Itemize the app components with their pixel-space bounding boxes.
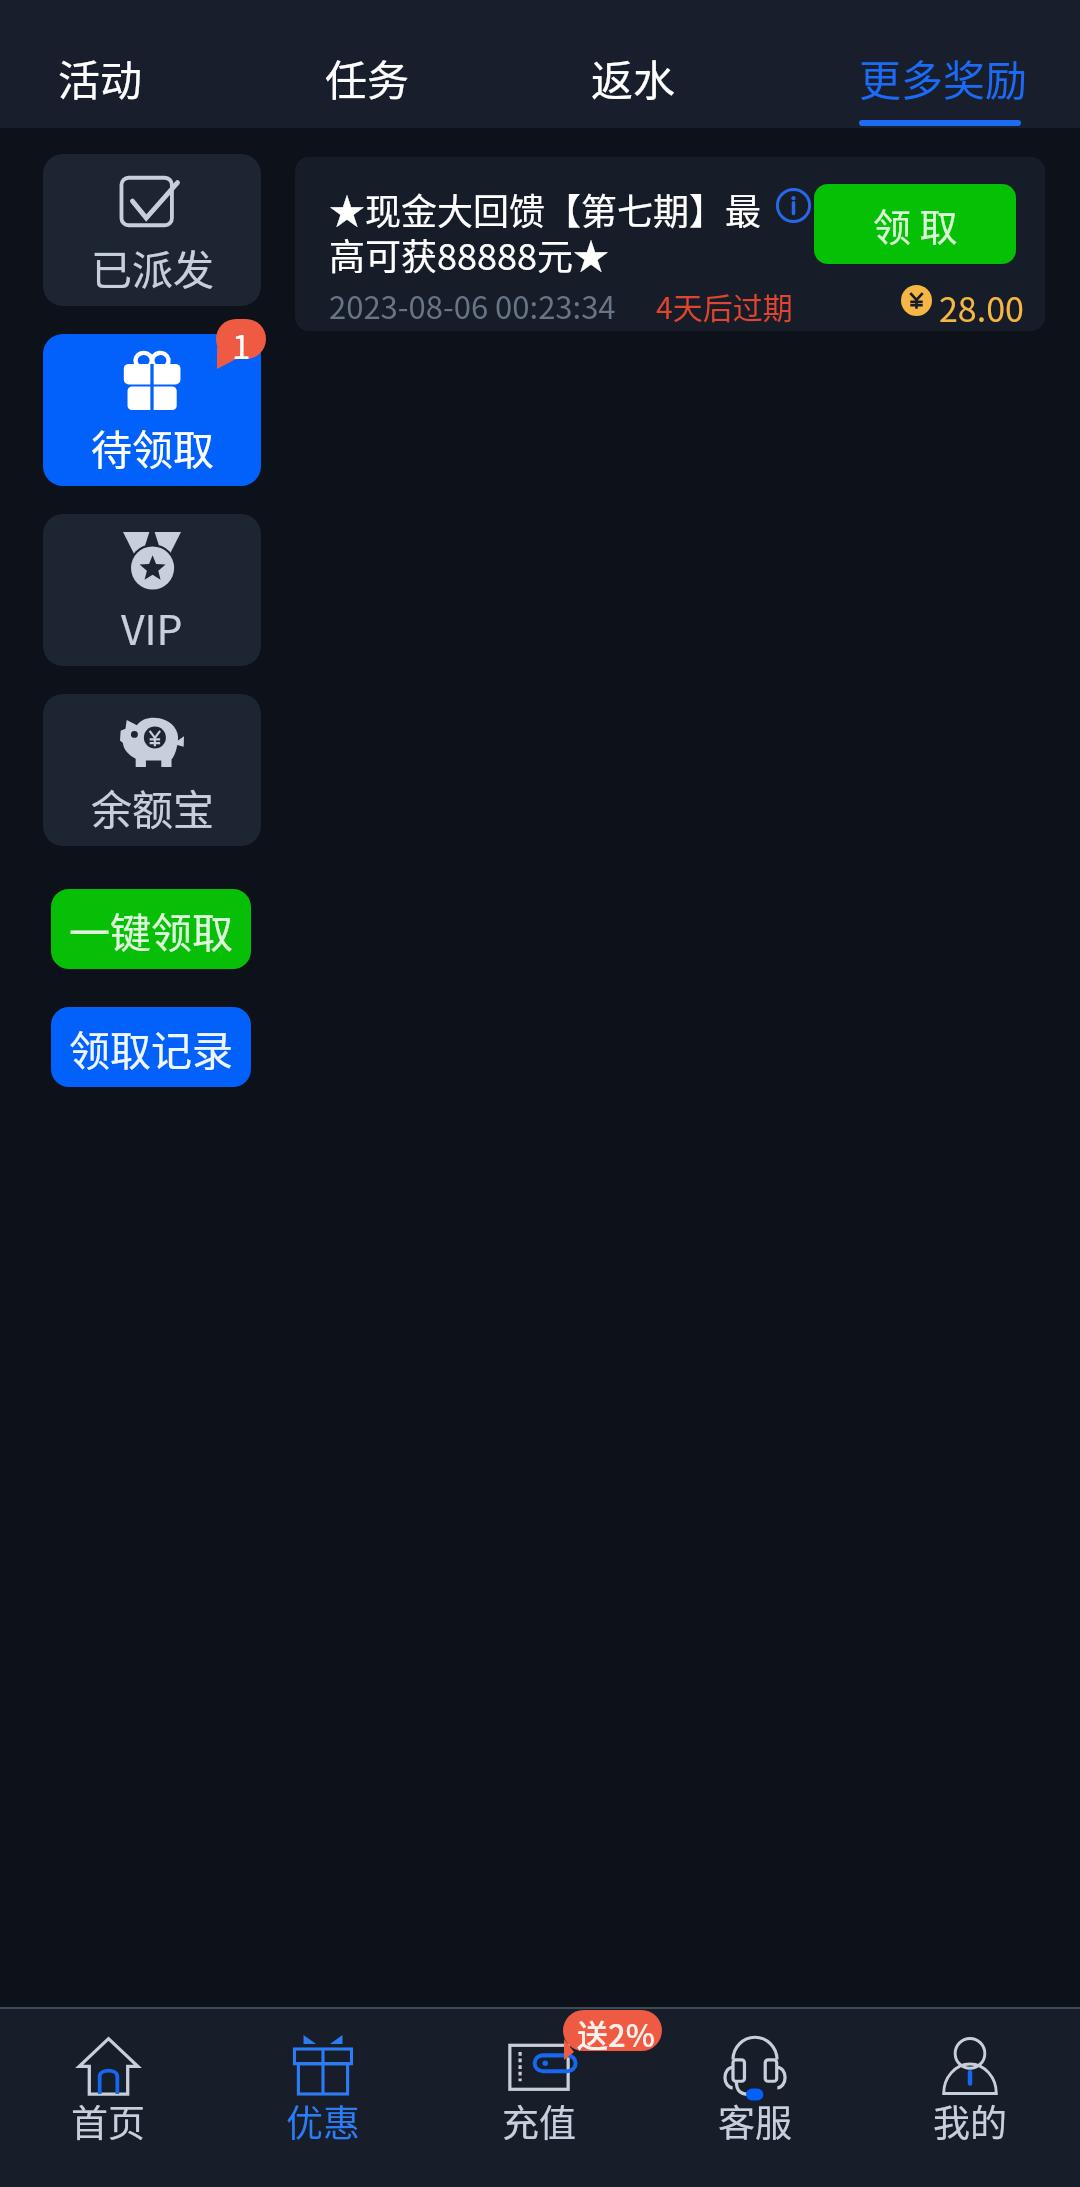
button[interactable]: 一键领取 xyxy=(51,889,251,969)
button[interactable]: 我的 xyxy=(862,2009,1078,2187)
staticText: 领取记录 xyxy=(69,1018,233,1077)
staticText: 余额宝 xyxy=(91,777,214,836)
staticText: 领 取 xyxy=(873,197,958,252)
staticText: 活动 xyxy=(58,47,143,108)
button[interactable]: VIP xyxy=(43,514,261,666)
staticText: 任务 xyxy=(325,47,410,108)
staticText: 送2% xyxy=(577,2011,655,2056)
button[interactable]: 余额宝 xyxy=(43,694,261,846)
button[interactable]: 优惠 xyxy=(215,2009,431,2187)
staticText: 2023-08-06 00:23:34 xyxy=(329,283,616,328)
staticText: 首页 xyxy=(71,2094,145,2148)
staticText: 返水 xyxy=(591,47,676,108)
button[interactable]: 待领取 xyxy=(43,334,261,486)
button[interactable]: 客服 xyxy=(647,2009,863,2187)
staticText: VIP xyxy=(121,597,183,656)
staticText: 客服 xyxy=(718,2094,792,2148)
button[interactable]: 活动 xyxy=(0,0,233,128)
button[interactable]: 领 取 xyxy=(814,184,1016,264)
button[interactable]: 返水 xyxy=(499,0,786,128)
button[interactable]: ★现金大回馈【第七期】最高可获88888元★ xyxy=(295,157,1045,331)
staticText: 已派发 xyxy=(91,237,214,296)
staticText: 28.00 xyxy=(939,283,1024,331)
staticText: 优惠 xyxy=(286,2094,360,2148)
button[interactable]: 充值 xyxy=(431,2009,647,2187)
button[interactable]: 更多奖励 xyxy=(786,0,1080,128)
staticText: 一键领取 xyxy=(69,900,233,959)
staticText: ★现金大回馈【第七期】最高可获88888元★ xyxy=(329,183,761,280)
staticText: 充值 xyxy=(502,2094,576,2148)
staticText: 待领取 xyxy=(91,417,214,476)
staticText: 我的 xyxy=(933,2094,1007,2148)
button[interactable]: 首页 xyxy=(0,2009,216,2187)
staticText: 更多奖励 xyxy=(859,47,1028,108)
button[interactable]: Info xyxy=(776,188,811,223)
staticText: 1 xyxy=(232,321,251,369)
button[interactable]: 领取记录 xyxy=(51,1007,251,1087)
button[interactable]: 任务 xyxy=(233,0,499,128)
button[interactable]: 已派发 xyxy=(43,154,261,306)
staticText: 4天后过期 xyxy=(656,284,793,327)
